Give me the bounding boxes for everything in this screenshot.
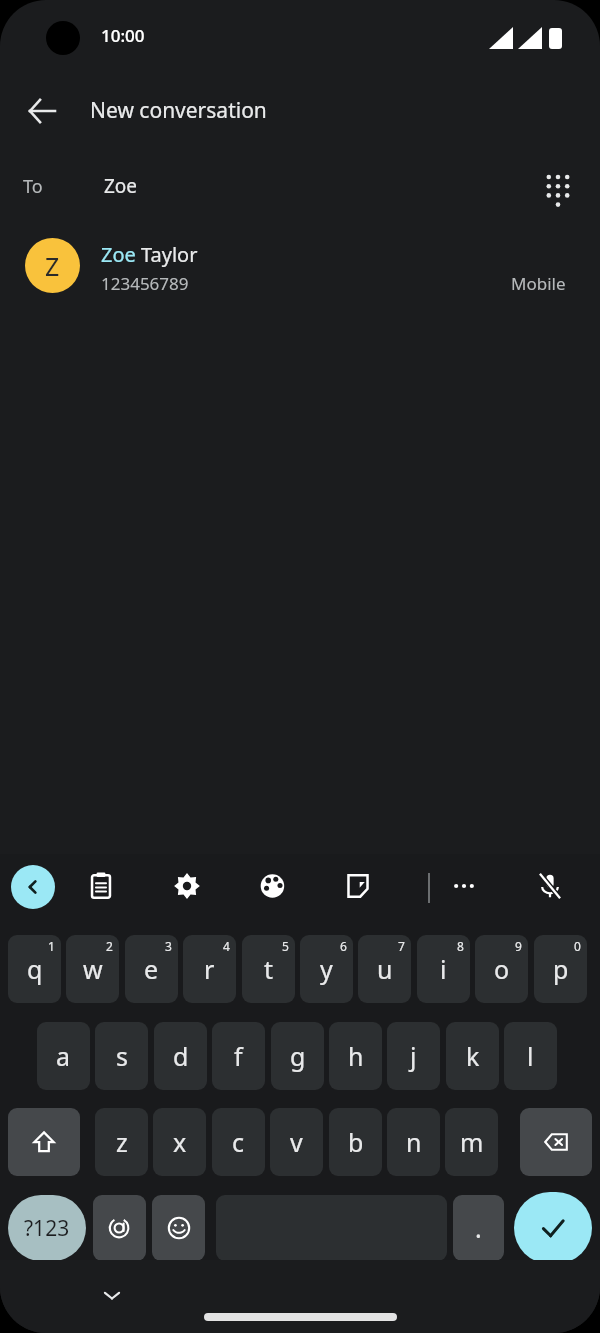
staticText: z xyxy=(116,1125,128,1159)
staticText: p xyxy=(553,952,569,986)
staticText: 7 xyxy=(398,938,405,954)
staticText: 10:00 xyxy=(101,24,145,47)
staticText: x xyxy=(173,1125,187,1159)
staticText: To xyxy=(23,174,43,199)
staticText: i xyxy=(440,952,447,986)
button[interactable]: o xyxy=(475,935,528,1003)
button[interactable]: a xyxy=(37,1022,90,1090)
staticText: g xyxy=(290,1039,306,1073)
staticText: 8 xyxy=(457,938,464,954)
button[interactable]: e xyxy=(125,935,178,1003)
button[interactable]: p xyxy=(534,935,587,1003)
staticText: 123456789 xyxy=(101,272,189,295)
staticText: b xyxy=(348,1125,364,1159)
button[interactable]: Hide keyboard xyxy=(91,1274,133,1316)
button[interactable]: z xyxy=(95,1108,148,1176)
staticText: Zoe Taylor xyxy=(101,241,198,268)
button[interactable]: More options xyxy=(447,869,481,903)
button[interactable]: h xyxy=(329,1022,382,1090)
staticText: q xyxy=(27,952,43,986)
staticText: l xyxy=(527,1039,534,1073)
staticText: 1 xyxy=(48,938,55,954)
button[interactable]: Done xyxy=(514,1192,592,1264)
staticText: t xyxy=(264,952,274,986)
button[interactable]: r xyxy=(183,935,236,1003)
button[interactable]: Emoji xyxy=(152,1195,205,1261)
staticText: Z xyxy=(45,249,60,283)
button[interactable]: To xyxy=(0,148,600,226)
staticText: ?123 xyxy=(24,1214,70,1243)
button[interactable]: f xyxy=(212,1022,265,1090)
button[interactable]: Sticker xyxy=(341,869,375,903)
button[interactable]: Voice input off xyxy=(533,869,567,903)
staticText: Mobile xyxy=(511,272,566,295)
button[interactable]: Collapse toolbar xyxy=(11,865,55,909)
button[interactable]: d xyxy=(154,1022,207,1090)
button[interactable]: m xyxy=(445,1108,498,1176)
button[interactable]: Back xyxy=(18,87,66,135)
button[interactable]: s xyxy=(95,1022,148,1090)
button[interactable]: v xyxy=(270,1108,323,1176)
staticText: 6 xyxy=(340,938,347,954)
button[interactable]: k xyxy=(446,1022,499,1090)
button[interactable]: q xyxy=(8,935,61,1003)
staticText: 9 xyxy=(515,938,522,954)
button[interactable]: l xyxy=(504,1022,557,1090)
staticText: s xyxy=(116,1039,128,1073)
button[interactable]: ?123 xyxy=(8,1195,86,1261)
staticText: a xyxy=(56,1039,71,1073)
button[interactable]: u xyxy=(358,935,411,1003)
staticText: 4 xyxy=(223,938,230,954)
staticText: New conversation xyxy=(90,96,267,125)
staticText: c xyxy=(232,1125,245,1159)
staticText: y xyxy=(320,952,333,986)
staticText: f xyxy=(234,1039,243,1073)
staticText: o xyxy=(494,952,510,986)
staticText: 5 xyxy=(282,938,289,954)
button[interactable]: n xyxy=(387,1108,440,1176)
staticText: 0 xyxy=(574,938,581,954)
button[interactable]: w xyxy=(66,935,119,1003)
staticText: m xyxy=(460,1125,484,1159)
button[interactable]: At sign xyxy=(93,1195,146,1261)
staticText: 3 xyxy=(165,938,172,954)
staticText: e xyxy=(144,952,159,986)
button[interactable]: g xyxy=(271,1022,324,1090)
staticText: 2 xyxy=(106,938,113,954)
staticText: d xyxy=(173,1039,189,1073)
button[interactable]: t xyxy=(242,935,295,1003)
button[interactable]: Clipboard xyxy=(84,869,118,903)
button[interactable]: x xyxy=(153,1108,206,1176)
staticText: w xyxy=(83,952,103,986)
button[interactable]: j xyxy=(387,1022,440,1090)
button[interactable]: . xyxy=(453,1195,504,1261)
staticText: k xyxy=(466,1039,480,1073)
staticText: . xyxy=(475,1211,482,1245)
button[interactable]: Shift xyxy=(8,1108,80,1176)
button[interactable]: b xyxy=(329,1108,382,1176)
button[interactable]: Dialpad xyxy=(533,163,583,213)
button[interactable]: Settings xyxy=(170,869,204,903)
staticText: v xyxy=(290,1125,303,1159)
staticText: Zoe xyxy=(104,173,138,199)
button[interactable]: y xyxy=(300,935,353,1003)
staticText: h xyxy=(348,1039,364,1073)
staticText: n xyxy=(406,1125,422,1159)
button[interactable]: Themes xyxy=(256,869,290,903)
staticText: j xyxy=(410,1039,417,1073)
button[interactable]: c xyxy=(212,1108,265,1176)
button[interactable]: Z xyxy=(0,226,600,308)
staticText: u xyxy=(377,952,393,986)
button[interactable]: Backspace xyxy=(520,1108,592,1176)
staticText: r xyxy=(204,952,215,986)
button[interactable]: i xyxy=(417,935,470,1003)
